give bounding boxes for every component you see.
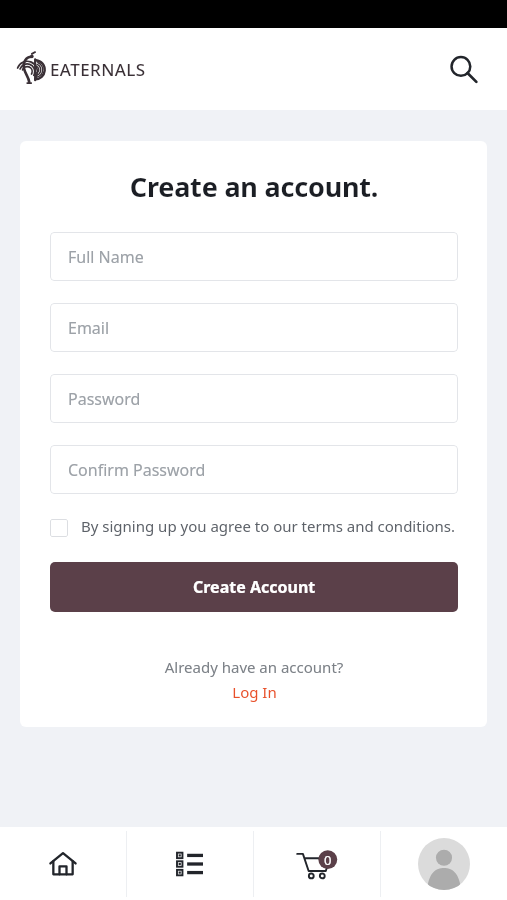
button[interactable]: Profile [380, 827, 507, 900]
button[interactable]: EATERNALS [17, 51, 146, 87]
button[interactable]: By signing up you agree to our terms and… [50, 516, 458, 536]
button[interactable]: Full Name [50, 232, 458, 281]
button[interactable]: Log In [232, 682, 277, 702]
button[interactable]: Confirm Password [50, 445, 458, 494]
button[interactable]: Home [0, 827, 126, 900]
staticText: By signing up you agree to our terms and… [81, 516, 456, 536]
button[interactable]: Orders [126, 827, 253, 900]
staticText: 0 [324, 851, 332, 869]
staticText: Full Name [68, 246, 144, 268]
button[interactable]: Password [50, 374, 458, 423]
staticText: Already have an account? [50, 657, 458, 677]
staticText: Create an account. [50, 168, 458, 205]
button[interactable]: Cart [253, 827, 380, 900]
button[interactable]: Create Account [50, 562, 458, 612]
button[interactable]: Search [443, 49, 483, 89]
button[interactable]: Email [50, 303, 458, 352]
staticText: Confirm Password [68, 459, 206, 481]
staticText: Create Account [193, 576, 316, 598]
staticText: Email [68, 317, 110, 339]
staticText: EATERNALS [50, 58, 146, 81]
staticText: Password [68, 388, 141, 410]
